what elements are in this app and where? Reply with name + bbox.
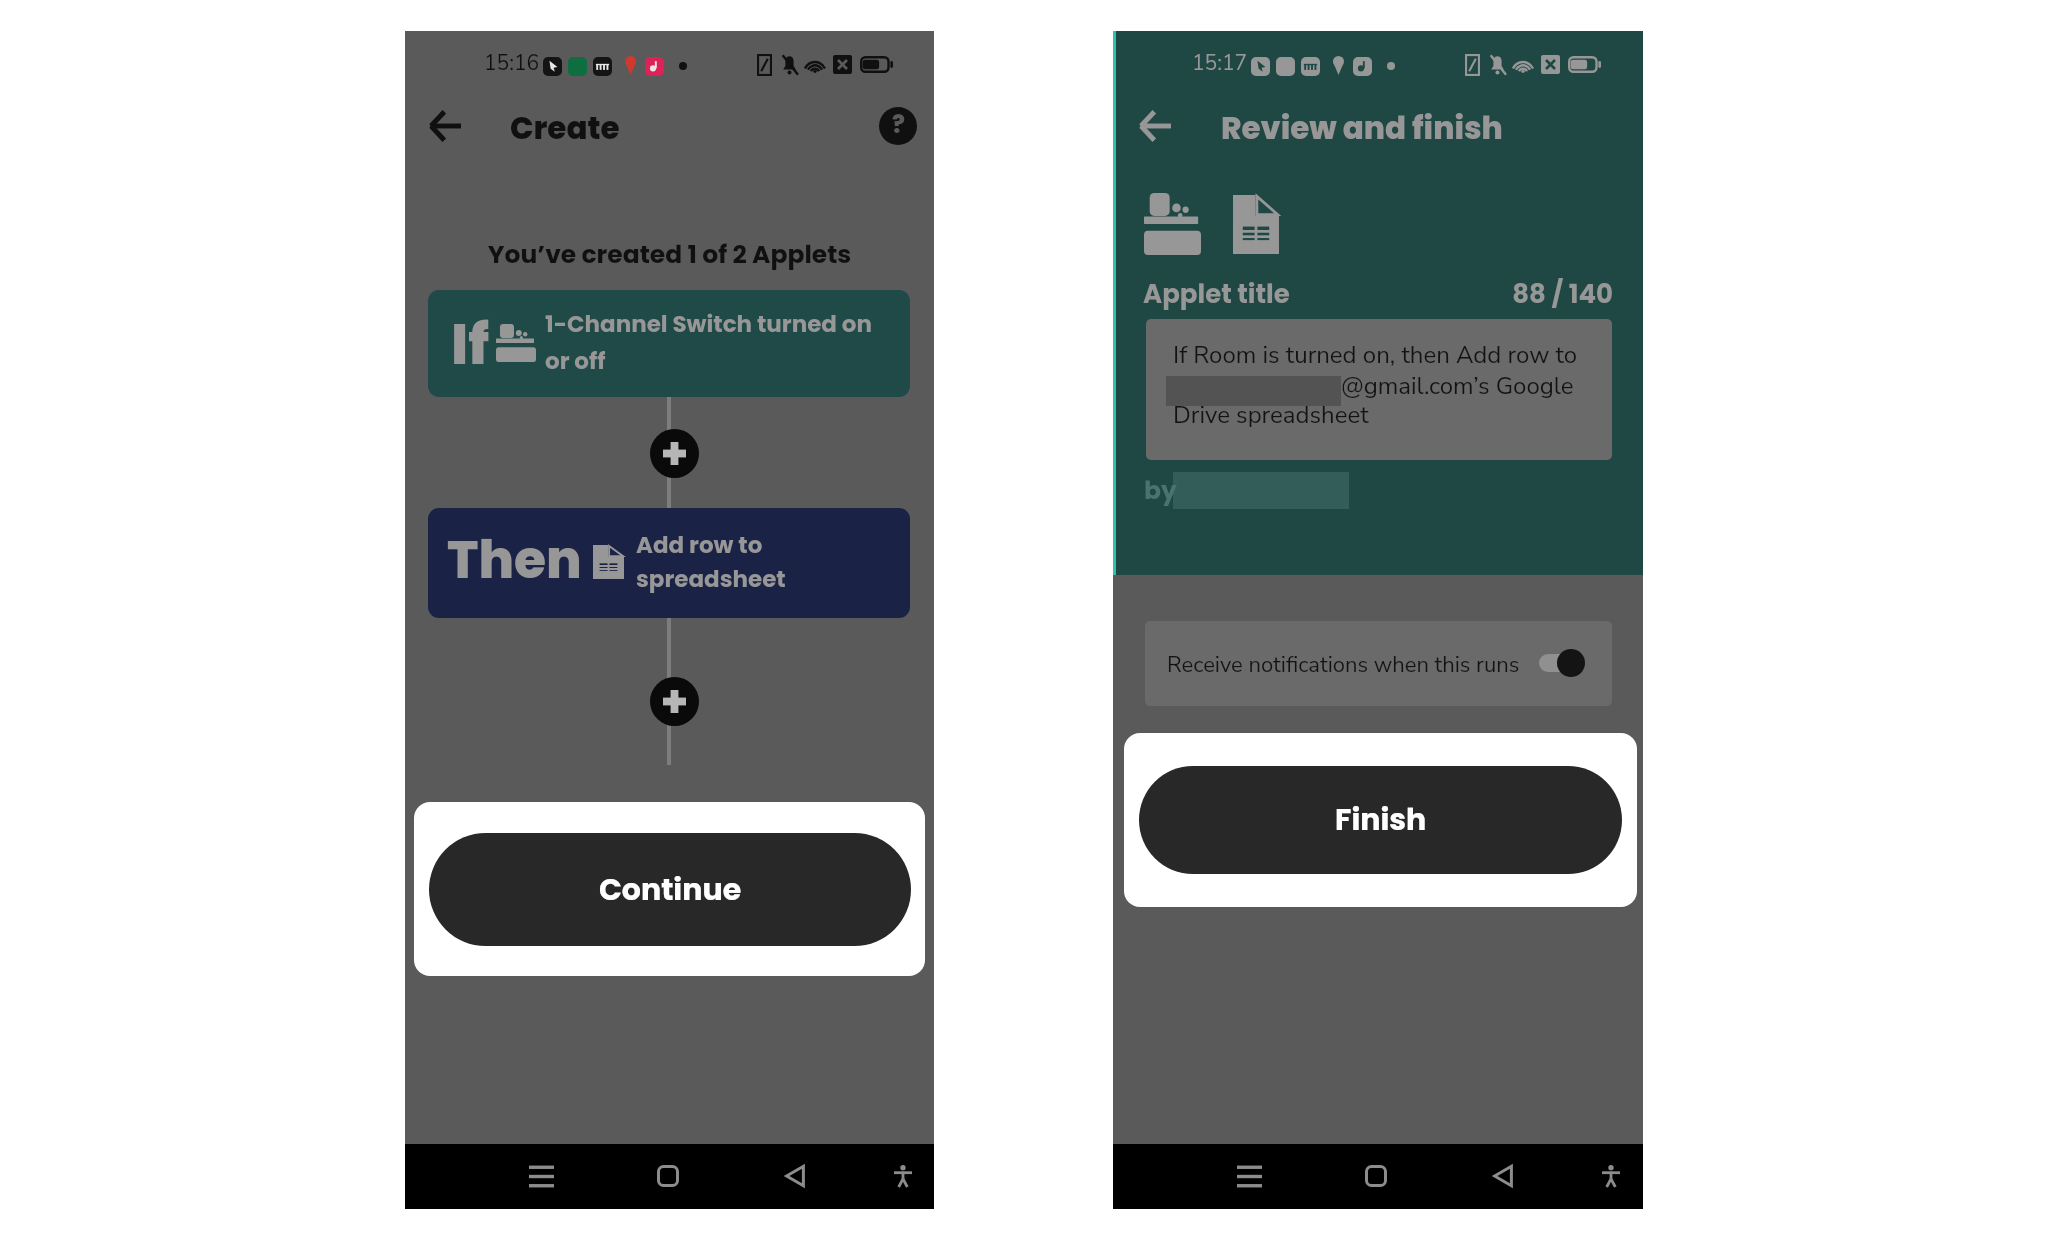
button[interactable]: Recents xyxy=(1227,1154,1271,1198)
staticText: Add row to spreadsheet xyxy=(636,529,786,595)
staticText: ? xyxy=(892,108,905,142)
staticText: Receive notifications when this runs xyxy=(1167,650,1520,680)
button[interactable]: Home xyxy=(646,1154,690,1198)
button[interactable]: If Room is turned on, then Add row to xyxy=(1146,319,1612,460)
button[interactable]: Back xyxy=(773,1154,817,1198)
staticText: Continue xyxy=(599,869,742,911)
button[interactable]: Then xyxy=(428,508,910,618)
staticText: Finish xyxy=(1335,799,1427,841)
button[interactable]: Add xyxy=(650,677,699,726)
button[interactable]: Back xyxy=(1481,1154,1525,1198)
button[interactable]: Finish xyxy=(1139,766,1622,874)
button[interactable]: Back xyxy=(1131,102,1179,150)
button[interactable]: Back xyxy=(421,102,469,150)
staticText: @gmail.com’s Google xyxy=(1341,370,1574,403)
button[interactable]: Accessibility xyxy=(881,1154,925,1198)
staticText: If Room is turned on, then Add row to xyxy=(1173,339,1578,372)
staticText: Drive spreadsheet xyxy=(1173,399,1369,432)
button[interactable]: Recents xyxy=(519,1154,563,1198)
staticText: If xyxy=(451,305,490,383)
button[interactable]: Accessibility xyxy=(1589,1154,1633,1198)
staticText: Then xyxy=(447,523,582,596)
staticText: You’ve created 1 of 2 Applets xyxy=(405,237,934,272)
staticText: 15:16 xyxy=(484,49,544,78)
button[interactable]: Continue xyxy=(429,833,911,946)
button[interactable]: Receive notifications when this runs xyxy=(1145,621,1612,706)
staticText: 88 / 140 xyxy=(1483,276,1613,312)
staticText: 1-Channel Switch turned on or off xyxy=(545,308,872,377)
button[interactable]: Add xyxy=(650,429,699,478)
staticText: 15:17 xyxy=(1192,49,1252,78)
staticText: Review and finish xyxy=(1221,106,1503,149)
staticText: by xyxy=(1144,473,1177,508)
staticText: Create xyxy=(510,106,620,149)
button[interactable]: Home xyxy=(1354,1154,1398,1198)
staticText: Applet title xyxy=(1143,276,1290,312)
button[interactable]: Help xyxy=(879,107,917,145)
button[interactable]: If xyxy=(428,290,910,397)
